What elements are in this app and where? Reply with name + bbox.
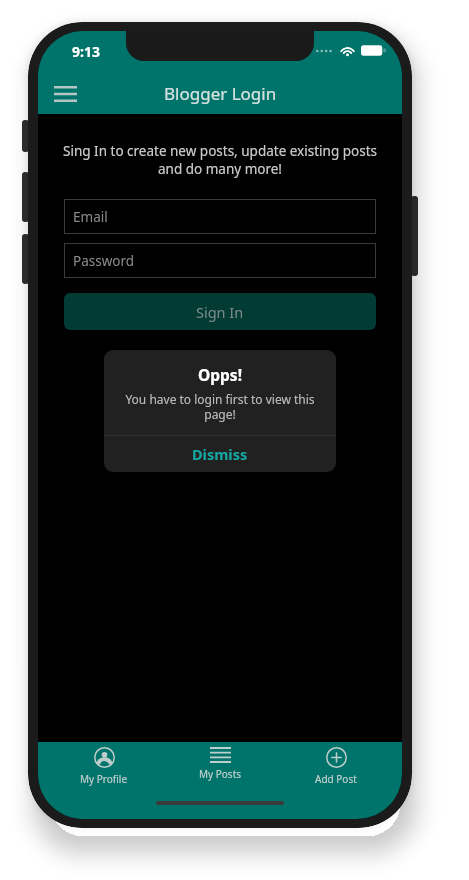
- staticText: Opps!: [198, 364, 243, 385]
- staticText: My Posts: [199, 767, 242, 781]
- button[interactable]: Password: [64, 243, 376, 278]
- button[interactable]: Sign In: [64, 293, 376, 330]
- staticText: Sing In to create new posts, update exis…: [59, 142, 381, 178]
- staticText: Add Post: [315, 772, 357, 786]
- staticText: 9:13: [72, 42, 100, 61]
- button[interactable]: Add Post: [286, 742, 386, 790]
- button[interactable]: My Profile: [54, 742, 154, 790]
- staticText: You have to login first to view this pag…: [115, 391, 325, 422]
- staticText: My Profile: [80, 772, 128, 786]
- staticText: Blogger Login: [164, 82, 277, 105]
- staticText: Email: [73, 208, 108, 226]
- button[interactable]: Email: [64, 199, 376, 234]
- staticText: Sign In: [196, 302, 244, 322]
- staticText: Dismiss: [192, 444, 248, 464]
- button[interactable]: Open navigation menu: [44, 73, 86, 114]
- staticText: Password: [73, 252, 135, 270]
- button[interactable]: Dismiss: [104, 436, 336, 472]
- button[interactable]: My Posts: [170, 742, 270, 790]
